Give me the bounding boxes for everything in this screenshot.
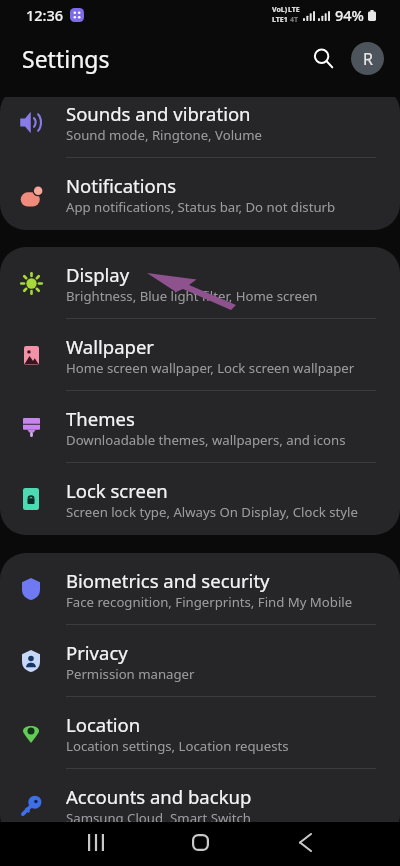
button[interactable]: Privacy <box>0 625 400 697</box>
staticText: Location <box>66 712 141 737</box>
staticText: 4T <box>290 15 299 25</box>
staticText: Lock screen <box>66 478 168 503</box>
staticText: Sound mode, Ringtone, Volume <box>66 126 262 144</box>
staticText: Downloadable themes, wallpapers, and ico… <box>66 431 346 449</box>
staticText: 12:36 <box>26 5 64 25</box>
staticText: VoL) <box>272 5 288 15</box>
staticText: Samsung Cloud, Smart Switch <box>66 809 251 827</box>
staticText: R <box>363 48 373 70</box>
button[interactable]: Lock screen <box>0 463 400 535</box>
staticText: 94% <box>335 5 364 25</box>
staticText: Face recognition, Fingerprints, Find My … <box>66 593 353 611</box>
staticText: Accounts and backup <box>66 784 252 809</box>
button[interactable]: Location <box>0 697 400 769</box>
staticText: Themes <box>66 406 135 431</box>
staticText: Screen lock type, Always On Display, Clo… <box>66 503 358 521</box>
staticText: LTE <box>288 5 300 15</box>
button[interactable]: Sounds and vibration <box>0 97 400 158</box>
staticText: App notifications, Status bar, Do not di… <box>66 198 336 216</box>
button[interactable]: Notifications <box>0 158 400 230</box>
button[interactable]: Search <box>303 38 343 78</box>
button[interactable]: Home <box>170 822 230 863</box>
staticText: Biometrics and security <box>66 568 270 593</box>
button[interactable]: Display <box>0 247 400 319</box>
staticText: Sounds and vibration <box>66 101 251 126</box>
staticText: Brightness, Blue light filter, Home scre… <box>66 287 318 305</box>
staticText: Permission manager <box>66 665 195 683</box>
staticText: LTE1 <box>272 15 288 25</box>
button[interactable]: Back <box>275 822 335 863</box>
button[interactable]: Account <box>351 42 384 75</box>
staticText: Notifications <box>66 173 177 198</box>
button[interactable]: Wallpaper <box>0 319 400 391</box>
button[interactable]: Accounts and backup <box>0 769 400 841</box>
staticText: Home screen wallpaper, Lock screen wallp… <box>66 359 355 377</box>
button[interactable]: Themes <box>0 391 400 463</box>
button[interactable]: Biometrics and security <box>0 553 400 625</box>
staticText: Wallpaper <box>66 334 154 359</box>
staticText: Privacy <box>66 640 128 665</box>
staticText: Settings <box>22 43 110 74</box>
staticText: Display <box>66 262 130 287</box>
staticText: Location settings, Location requests <box>66 737 289 755</box>
button[interactable]: Recents <box>66 822 126 863</box>
